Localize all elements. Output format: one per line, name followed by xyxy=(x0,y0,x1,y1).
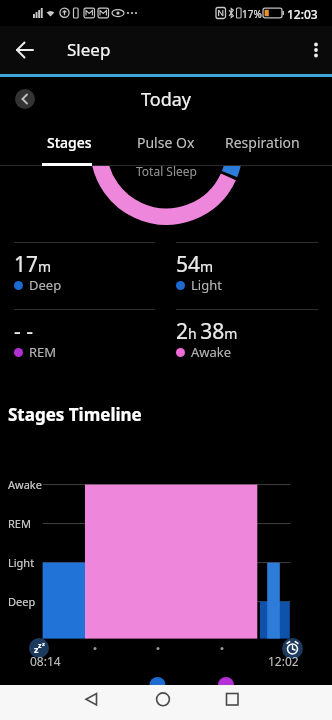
staticText: 12:02 xyxy=(268,653,299,669)
staticText: 08:14 xyxy=(30,653,61,669)
staticText: Today xyxy=(141,87,191,112)
staticText: Deep xyxy=(29,276,62,294)
button[interactable]: 54m xyxy=(176,242,318,304)
button[interactable] xyxy=(0,685,110,720)
button[interactable] xyxy=(221,685,332,720)
button[interactable]: 17m xyxy=(14,242,155,304)
staticText: 12:03 xyxy=(287,6,318,22)
button[interactable]: 2h 38m xyxy=(176,309,318,371)
button[interactable]: z xyxy=(29,638,49,658)
staticText: Awake xyxy=(8,477,42,492)
staticText: z xyxy=(42,640,45,648)
staticText: z xyxy=(38,641,42,651)
button[interactable] xyxy=(15,89,35,109)
staticText: Respiration xyxy=(225,133,300,152)
staticText: REM xyxy=(8,516,31,531)
button[interactable]: Respiration xyxy=(207,121,317,163)
staticText: 17m xyxy=(14,250,52,279)
button[interactable]: Pulse Ox xyxy=(111,121,221,163)
staticText: 2h 38m xyxy=(176,317,238,346)
staticText: z xyxy=(34,643,39,655)
button[interactable]: - - xyxy=(14,309,155,371)
button[interactable]: Stages xyxy=(14,121,124,163)
staticText: - - xyxy=(14,317,33,346)
staticText: Stages Timeline xyxy=(8,403,142,426)
staticText: 17% xyxy=(242,7,262,21)
staticText: Deep xyxy=(8,594,36,609)
staticText: Total Sleep xyxy=(136,166,197,179)
staticText: 54m xyxy=(176,250,214,279)
button[interactable] xyxy=(282,638,303,659)
staticText: Light xyxy=(8,555,35,570)
button[interactable] xyxy=(308,42,324,58)
staticText: REM xyxy=(29,343,57,361)
button[interactable] xyxy=(15,40,35,60)
button[interactable] xyxy=(110,685,221,720)
staticText: Light xyxy=(191,276,222,294)
staticText: Sleep xyxy=(67,38,111,61)
staticText: Pulse Ox xyxy=(137,133,195,152)
staticText: Stages xyxy=(47,133,92,152)
staticText: Awake xyxy=(191,343,232,361)
